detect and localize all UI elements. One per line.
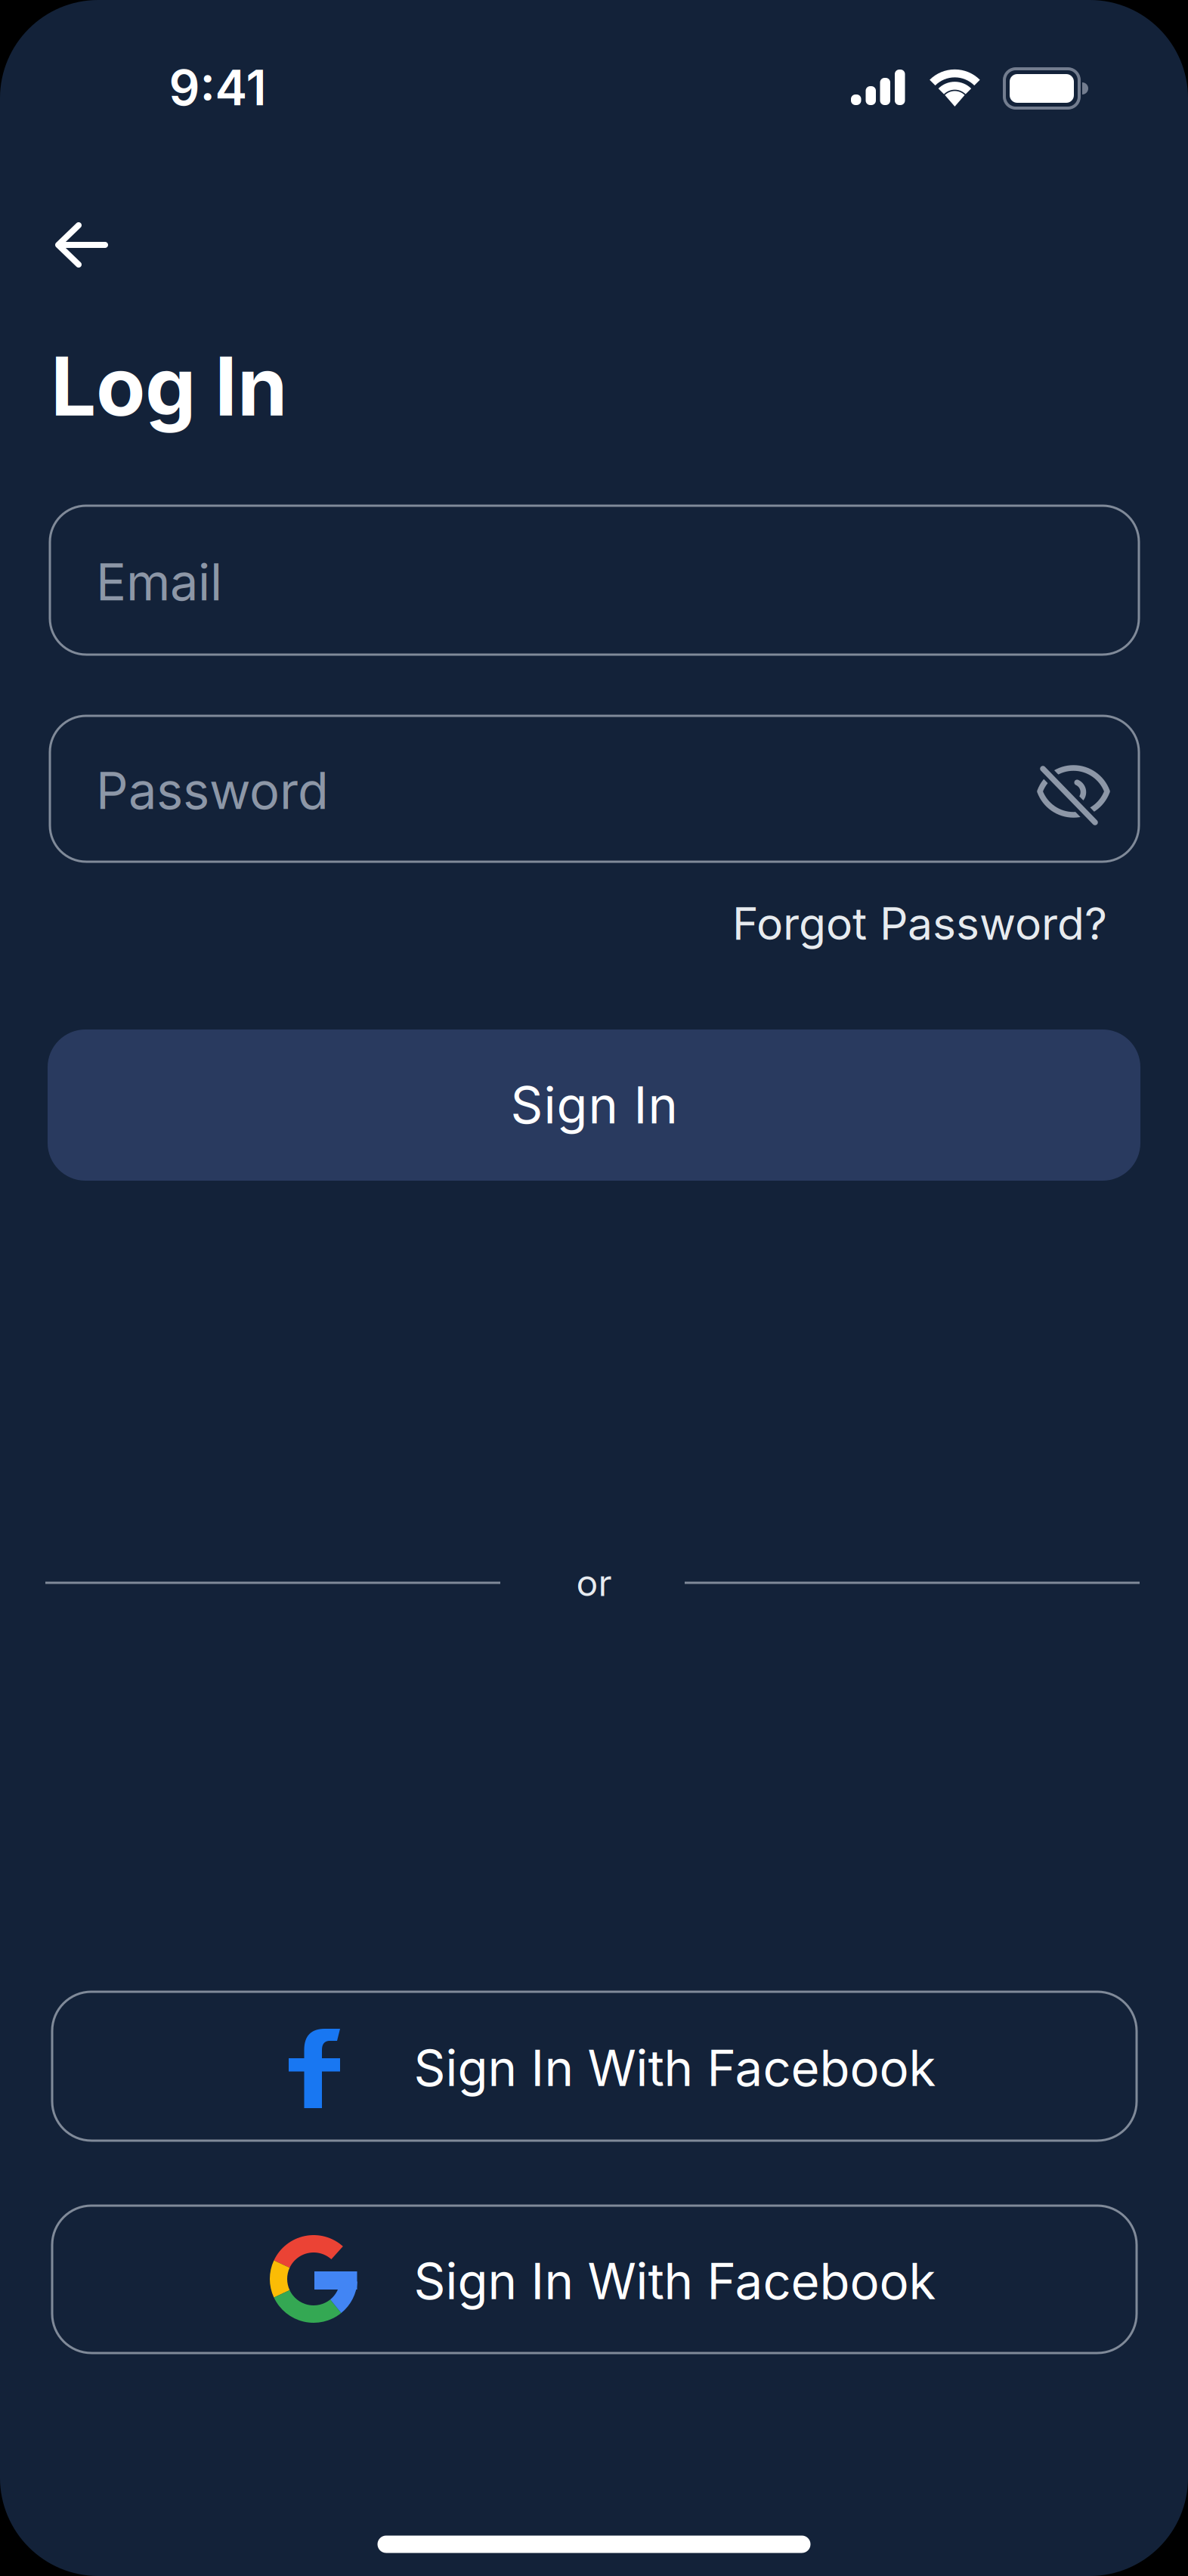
- staticText: Sign In With Facebook: [414, 2251, 936, 2311]
- staticText: Email: [96, 552, 222, 613]
- staticText: 9:41: [169, 58, 266, 117]
- staticText: Password: [96, 760, 329, 821]
- staticText: Log In: [51, 337, 287, 435]
- staticText: Sign In With Facebook: [414, 2038, 936, 2098]
- staticText: Forgot Password?: [732, 897, 1107, 951]
- staticText: Sign In: [510, 1075, 678, 1136]
- staticText: or: [576, 1561, 612, 1605]
